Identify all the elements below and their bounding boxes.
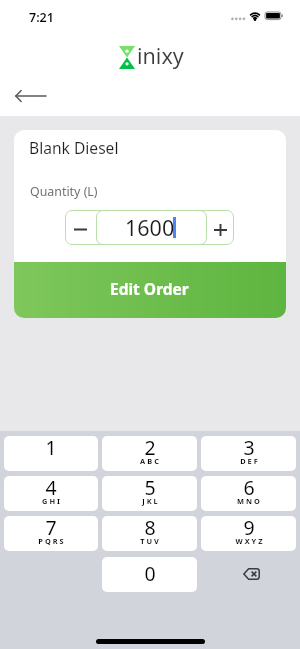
button[interactable]: 3 <box>201 436 296 471</box>
staticText: 1600 <box>125 213 175 242</box>
staticText: DEF <box>240 456 260 466</box>
staticText: JKL <box>142 496 160 506</box>
staticText: 0 <box>144 560 156 587</box>
staticText: 3 <box>243 436 255 461</box>
staticText: 5 <box>144 476 156 501</box>
button[interactable]: 9 <box>201 516 296 551</box>
staticText: 9 <box>243 516 255 541</box>
button[interactable]: 5 <box>102 476 197 511</box>
staticText: 7 <box>45 516 57 541</box>
staticText: ABC <box>140 456 161 466</box>
staticText: GHI <box>42 496 62 506</box>
button[interactable]: 8 <box>102 516 197 551</box>
button[interactable]: 4 <box>4 476 98 511</box>
staticText: 7:21 <box>29 9 54 26</box>
button[interactable]: 0 <box>102 557 197 592</box>
button[interactable]: 1 <box>4 436 98 471</box>
button[interactable]: 7 <box>4 516 98 551</box>
button[interactable]: Back <box>11 82 51 110</box>
staticText: 8 <box>144 516 156 541</box>
staticText: PQRS <box>38 536 66 546</box>
staticText: 1 <box>45 436 57 461</box>
staticText: Edit Order <box>110 278 189 299</box>
button[interactable]: 6 <box>201 476 296 511</box>
button[interactable]: Backspace <box>201 557 296 592</box>
button[interactable]: Increase quantity <box>205 210 234 245</box>
staticText: inixy <box>137 41 184 70</box>
staticText: TUV <box>140 536 161 546</box>
staticText: MNO <box>237 496 262 506</box>
staticText: 6 <box>243 476 255 501</box>
button[interactable]: Decrease quantity <box>65 210 94 245</box>
button[interactable]: Edit Order <box>14 262 286 318</box>
staticText: 2 <box>144 436 156 461</box>
staticText: WXYZ <box>235 536 265 546</box>
staticText: Quantity (L) <box>30 183 98 200</box>
button[interactable]: 2 <box>102 436 197 471</box>
staticText: Blank Diesel <box>29 137 119 158</box>
staticText: 4 <box>45 476 57 501</box>
